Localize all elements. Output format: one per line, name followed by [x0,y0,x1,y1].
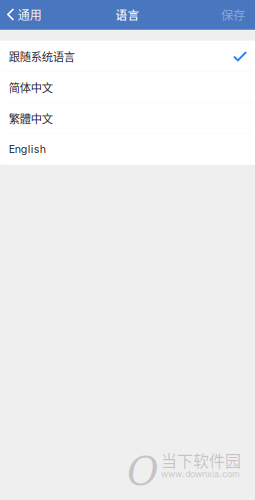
staticText: 保存 [221,5,245,23]
button[interactable]: 简体中文 [0,72,255,103]
staticText: English [9,143,46,156]
button[interactable]: 繁體中文 [0,103,255,134]
staticText: 跟随系统语言 [9,48,75,64]
button[interactable]: 跟随系统语言 [0,41,255,72]
staticText: 简体中文 [9,79,53,95]
button[interactable]: 通用 [0,0,47,29]
staticText: 当下软件园 [161,448,241,472]
button[interactable]: English [0,134,255,165]
staticText: www.downxia.com [161,468,240,479]
button[interactable]: 保存 [216,0,255,29]
staticText: O [127,449,159,494]
staticText: 通用 [18,6,42,23]
staticText: 语言 [115,6,139,23]
staticText: 繁體中文 [9,110,53,126]
